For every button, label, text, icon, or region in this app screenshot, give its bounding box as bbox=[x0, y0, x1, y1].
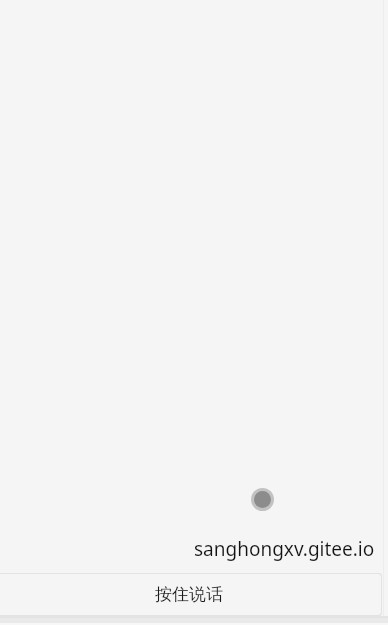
button[interactable]: Avatar bbox=[251, 488, 274, 511]
button[interactable]: 按住说话 bbox=[0, 574, 381, 615]
staticText: 按住说话 bbox=[155, 584, 223, 605]
staticText: sanghongxv.gitee.io bbox=[194, 536, 375, 562]
